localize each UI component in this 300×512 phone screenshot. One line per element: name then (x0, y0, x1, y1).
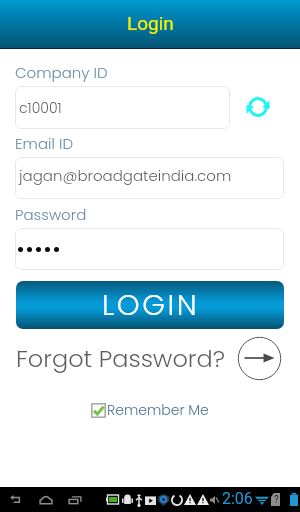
staticText: ? (274, 494, 279, 506)
staticText: Password (15, 204, 87, 225)
staticText: Remember Me (107, 400, 209, 420)
button[interactable]: Home (31, 487, 60, 512)
button[interactable]: Back (2, 487, 31, 512)
button[interactable]: Refresh (245, 94, 271, 120)
button[interactable]: Forgot Password? (14, 339, 228, 379)
button[interactable]: c10001 (15, 86, 230, 129)
button[interactable]: Recent apps (60, 487, 89, 512)
staticText: jagan@broadgateindia.com (19, 165, 232, 186)
staticText: Login (127, 12, 174, 34)
button[interactable]: Go (237, 336, 282, 381)
button[interactable]: Remember Me (91, 399, 209, 421)
staticText: 2:06 (222, 489, 253, 508)
button[interactable]: jagan@broadgateindia.com (15, 157, 284, 199)
staticText: Forgot Password? (16, 342, 226, 376)
staticText: c10001 (19, 98, 62, 118)
button[interactable]: LOGIN (16, 281, 284, 329)
staticText: LOGIN (102, 285, 200, 326)
button[interactable] (15, 228, 284, 270)
staticText: Company ID (15, 62, 108, 83)
staticText: Email ID (15, 133, 74, 154)
